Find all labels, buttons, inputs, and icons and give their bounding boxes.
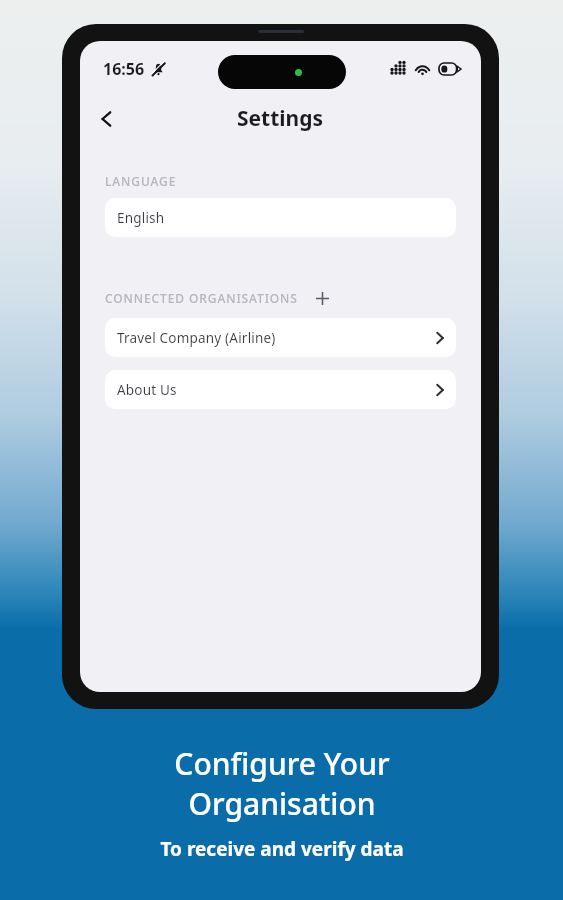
staticText: To receive and verify data	[160, 836, 404, 862]
button[interactable]: Back	[86, 98, 128, 140]
staticText: Travel Company (Airline)	[117, 329, 276, 347]
staticText: About Us	[117, 381, 177, 399]
button[interactable]: English	[105, 198, 456, 237]
staticText: Configure Your Organisation	[174, 743, 390, 824]
staticText: 16:56	[103, 58, 145, 80]
button[interactable]: Add organisation	[311, 287, 333, 309]
staticText: Settings	[237, 104, 324, 133]
staticText: CONNECTED ORGANISATIONS	[105, 290, 298, 306]
button[interactable]: About Us	[105, 370, 456, 409]
staticText: English	[117, 209, 165, 227]
button[interactable]: Travel Company (Airline)	[105, 318, 456, 357]
staticText: LANGUAGE	[105, 173, 177, 189]
